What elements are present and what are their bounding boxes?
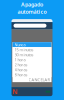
button[interactable]: 4 horas (12, 67, 51, 72)
staticText: N (12, 87, 17, 96)
staticText: Apagado (21, 1, 43, 8)
button[interactable]: 2 horas (12, 62, 51, 67)
button[interactable]: 1 hora (12, 57, 51, 62)
staticText: CANCELAR (28, 77, 49, 82)
button[interactable]: 30 minutos (12, 52, 51, 57)
button[interactable]: Nunca (12, 42, 51, 47)
staticText: 15 minutos (14, 47, 33, 52)
button[interactable]: 8 horas (12, 72, 51, 77)
button[interactable]: 15 minutos (12, 47, 51, 52)
staticText: 8 horas (14, 72, 27, 77)
staticText: 30 minutos (14, 52, 33, 57)
staticText: 1 hora (14, 57, 25, 62)
staticText: Nunca (14, 42, 25, 47)
staticText: 2 horas (14, 62, 27, 67)
staticText: automático (17, 8, 46, 15)
staticText: 4 horas (14, 67, 27, 72)
